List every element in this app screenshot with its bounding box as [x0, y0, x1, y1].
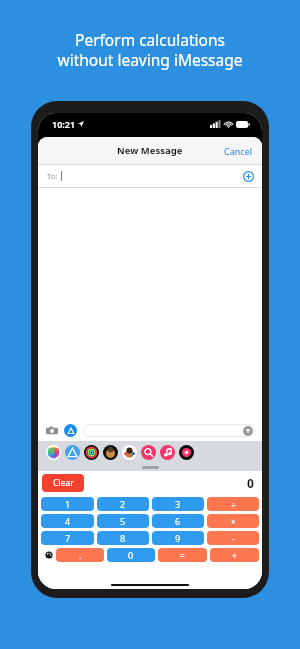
staticText: Cancel [224, 145, 253, 157]
button[interactable]: 6 [152, 514, 204, 528]
button[interactable]: Add contact [243, 171, 262, 182]
button[interactable]: App [103, 445, 118, 460]
staticText: New Message [117, 144, 183, 157]
staticText: × [231, 516, 236, 527]
button[interactable]: 5 [97, 514, 149, 528]
button[interactable]: + [210, 548, 259, 562]
button[interactable]: App [65, 445, 80, 460]
button[interactable]: 0 [107, 548, 155, 562]
button[interactable]: App [84, 445, 99, 460]
button[interactable]: App [141, 445, 156, 460]
staticText: 0 [128, 549, 134, 561]
staticText: 10:21 [52, 118, 76, 130]
button[interactable]: App [179, 445, 194, 460]
staticText: 8 [120, 532, 126, 544]
button[interactable]: 8 [97, 531, 149, 545]
staticText: 1 [65, 498, 71, 510]
button[interactable]: - [207, 531, 259, 545]
button[interactable]: Send [83, 424, 255, 437]
staticText: = [180, 550, 185, 561]
button[interactable]: Camera [45, 424, 58, 437]
staticText: - [232, 533, 235, 544]
button[interactable]: 2 [97, 497, 149, 511]
staticText: 2 [120, 498, 126, 510]
staticText: To: [47, 171, 58, 181]
staticText: 9 [175, 532, 181, 544]
staticText: 7 [65, 532, 71, 544]
button[interactable]: 3 [152, 497, 204, 511]
button[interactable]: 1 [41, 497, 94, 511]
staticText: + [232, 550, 237, 561]
button[interactable]: 4 [41, 514, 94, 528]
button[interactable]: Cancel [215, 139, 262, 163]
button[interactable]: Clear [42, 474, 84, 492]
button[interactable]: App [160, 445, 175, 460]
button[interactable]: App [122, 445, 137, 460]
staticText: ÷ [231, 499, 236, 510]
button[interactable]: App [46, 445, 61, 460]
staticText: 0 [247, 475, 254, 491]
staticText: 4 [65, 515, 71, 527]
button[interactable]: Send [243, 426, 253, 436]
button[interactable]: ÷ [207, 497, 259, 511]
staticText: 5 [120, 515, 126, 527]
staticText: . [79, 550, 82, 561]
staticText: Clear [53, 477, 74, 489]
staticText: 6 [175, 515, 181, 527]
button[interactable]: App Store [64, 424, 77, 437]
button[interactable]: × [207, 514, 259, 528]
button[interactable]: . [56, 548, 104, 562]
staticText: Perform calculations without leaving iMe… [57, 29, 243, 70]
button[interactable]: 9 [152, 531, 204, 545]
button[interactable]: 7 [41, 531, 94, 545]
button[interactable]: = [158, 548, 207, 562]
staticText: 3 [175, 498, 181, 510]
button[interactable]: Theme [41, 546, 56, 563]
